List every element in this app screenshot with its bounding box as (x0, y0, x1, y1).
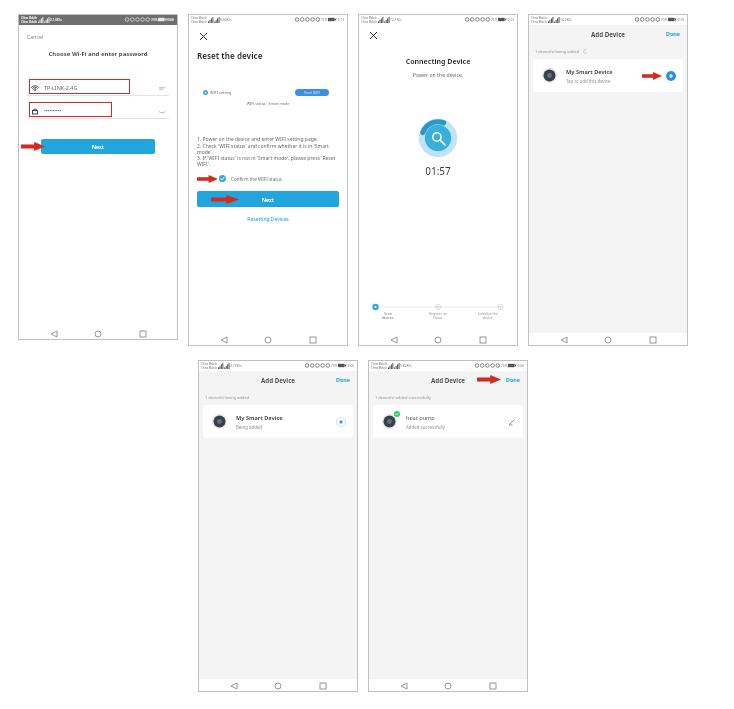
staticText: Add Device (198, 376, 358, 384)
staticText: China Mobile (201, 366, 217, 370)
staticText: 10:13 (506, 18, 515, 22)
staticText: Done (506, 376, 521, 383)
staticText: 10:06 (516, 364, 525, 368)
button[interactable]: Home (599, 333, 617, 346)
staticText: WIFI setting (210, 90, 232, 95)
staticText: Choose Wi-Fi and enter password (27, 50, 169, 58)
staticText: China Mobile (21, 16, 37, 20)
button[interactable]: heat pump (373, 405, 523, 438)
staticText: My Smart Device (236, 414, 283, 422)
staticText: 01:57 (367, 164, 509, 178)
staticText: 10:06 (166, 18, 175, 22)
button[interactable]: Add device (666, 71, 676, 81)
button[interactable]: Recents (484, 679, 502, 692)
staticText: China Mobile (21, 20, 37, 24)
button[interactable]: Back (385, 333, 403, 346)
staticText: Done (666, 30, 681, 37)
staticText: Scan devices. (367, 311, 409, 320)
button[interactable]: Rename (506, 417, 516, 427)
staticText: 71% (321, 18, 328, 22)
button[interactable]: Back (45, 327, 63, 340)
staticText: heat pump (406, 414, 435, 422)
button[interactable]: Back (395, 679, 413, 692)
button[interactable]: Home (259, 333, 277, 346)
staticText: Power on the device. (367, 71, 509, 78)
button[interactable]: Recents (474, 333, 492, 346)
staticText: Connecting Device (367, 57, 509, 67)
staticText: 73% (501, 364, 508, 368)
button[interactable]: TP-LINK-2.4G (27, 80, 169, 95)
staticText: Add Device (368, 376, 528, 384)
button[interactable]: Next (41, 139, 155, 154)
button[interactable]: Back (225, 679, 243, 692)
staticText: China Mobile (191, 20, 207, 24)
button[interactable]: Close (197, 30, 209, 42)
staticText: TP-LINK-2.4G (44, 84, 78, 91)
staticText: Reset WIFI (304, 91, 320, 95)
staticText: Add Device (528, 30, 688, 38)
staticText: Reset the device (197, 50, 263, 61)
staticText: WIFI status : Smart mode (197, 101, 339, 106)
staticText: 73% (331, 364, 338, 368)
staticText: Being added (236, 424, 263, 430)
staticText: Register on Cloud. (417, 311, 459, 320)
staticText: Next (262, 196, 274, 203)
staticText: Confirm the WIFI status (231, 176, 283, 182)
button[interactable]: Next (197, 191, 339, 207)
staticText: China Mobile (531, 16, 547, 20)
button[interactable]: Back (555, 333, 573, 346)
button[interactable]: Recents (304, 333, 322, 346)
staticText: China Mobile (531, 20, 547, 24)
staticText: Next (92, 143, 104, 150)
staticText: 1. Power on the device and enter WIFI se… (197, 136, 339, 167)
staticText: 5.82K/s (400, 363, 412, 368)
staticText: Tap to add this device (566, 78, 611, 84)
staticText: My Smart Device (566, 68, 613, 76)
button[interactable]: Cancel (27, 33, 44, 40)
staticText: 14.2K/s (560, 17, 572, 22)
button[interactable]: Recents (644, 333, 662, 346)
button[interactable]: Home (89, 327, 107, 340)
button[interactable]: Reset WIFI (295, 89, 329, 96)
button[interactable]: My Smart Device (533, 59, 683, 92)
button[interactable]: Confirm the WIFI status (197, 175, 339, 182)
button[interactable]: Adding (336, 417, 346, 427)
staticText: 1 device(s) being added (535, 49, 580, 54)
staticText: 10:16 (676, 18, 685, 22)
staticText: 10:13 (336, 18, 345, 22)
staticText: Added successfully (406, 424, 445, 430)
staticText: 1 device(s) added successfully (375, 395, 431, 400)
staticText: 0.94K/s (220, 17, 232, 22)
button[interactable]: Done (666, 30, 681, 37)
button[interactable]: Done (336, 376, 351, 383)
staticText: China Mobile (191, 16, 207, 20)
staticText: China Mobile (201, 362, 217, 366)
button[interactable]: •••••••••• (27, 103, 169, 118)
button[interactable]: Resetting Devices (197, 216, 339, 223)
staticText: 3.72K/s (230, 363, 242, 368)
button[interactable]: Home (439, 679, 457, 692)
staticText: 70% (661, 18, 668, 22)
staticText: 10:06 (346, 364, 355, 368)
button[interactable]: Close (367, 29, 379, 41)
staticText: China Mobile (371, 362, 387, 366)
staticText: 12.1K/s (390, 17, 402, 22)
button[interactable]: Done (506, 376, 521, 383)
staticText: 1 device(s) being added (205, 395, 250, 400)
button[interactable]: Home (269, 679, 287, 692)
button[interactable]: Home (429, 333, 447, 346)
staticText: Initialize the device. (467, 311, 509, 320)
button[interactable]: Recents (134, 327, 152, 340)
button[interactable]: Back (215, 333, 233, 346)
staticText: 73% (151, 18, 158, 22)
staticText: China Mobile (371, 366, 387, 370)
staticText: •••••••••• (44, 108, 62, 114)
button[interactable]: My Smart Device (203, 405, 353, 438)
staticText: 2.14K/s (50, 17, 62, 22)
button[interactable]: Recents (314, 679, 332, 692)
staticText: China Mobile (361, 20, 377, 24)
staticText: Done (336, 376, 351, 383)
staticText: 71% (491, 18, 498, 22)
staticText: China Mobile (361, 16, 377, 20)
